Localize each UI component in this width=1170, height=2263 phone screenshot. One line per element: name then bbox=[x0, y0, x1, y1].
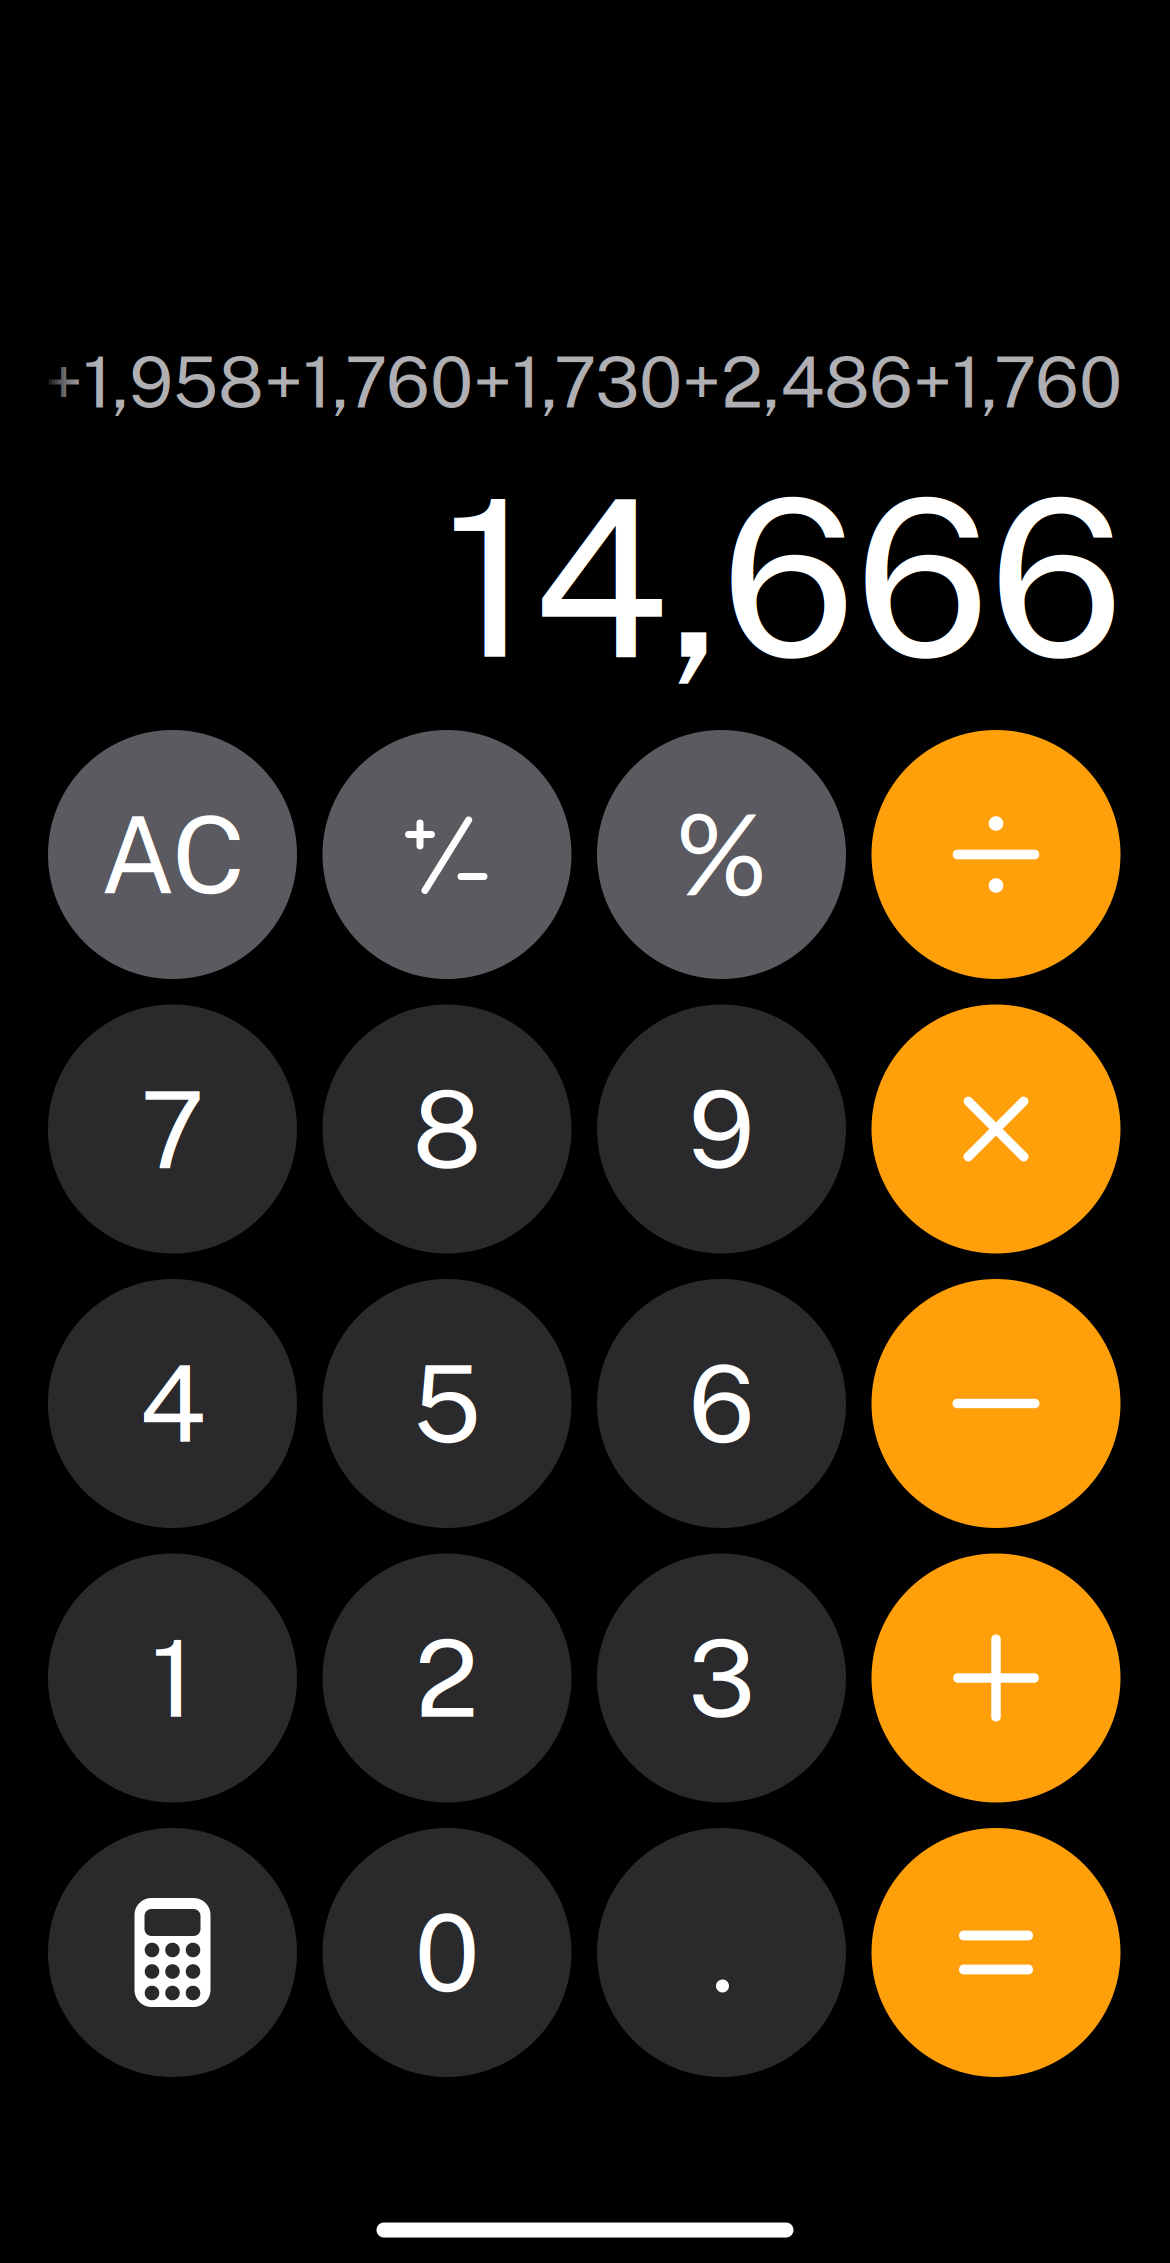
button[interactable]: Seven bbox=[48, 1004, 297, 1253]
staticText: % bbox=[676, 783, 767, 919]
staticText: 7 bbox=[140, 1066, 204, 1192]
button[interactable]: Multiply bbox=[871, 1004, 1120, 1253]
button[interactable]: Six bbox=[597, 1279, 846, 1528]
button[interactable]: Minus bbox=[871, 1279, 1120, 1528]
staticText: 3 bbox=[688, 1615, 755, 1741]
button[interactable]: Calculator modes bbox=[48, 1828, 297, 2077]
staticText: 2 bbox=[415, 1615, 479, 1741]
button[interactable]: Zero bbox=[322, 1828, 571, 2077]
button[interactable]: Four bbox=[48, 1279, 297, 1528]
staticText: 14,666 bbox=[444, 450, 1124, 706]
staticText: 6 bbox=[688, 1341, 754, 1466]
staticText: 0 bbox=[414, 1890, 479, 2015]
staticText: AC bbox=[100, 792, 245, 917]
staticText: +1,958+1,760+1,730+2,486+1,760 bbox=[44, 340, 1122, 423]
staticText: 4 bbox=[139, 1341, 206, 1466]
button[interactable]: One bbox=[48, 1553, 297, 1802]
button[interactable]: Five bbox=[322, 1279, 571, 1528]
staticText: 9 bbox=[688, 1066, 755, 1192]
button[interactable]: Decimal point bbox=[597, 1828, 846, 2077]
button[interactable]: Toggle sign bbox=[322, 730, 571, 979]
button[interactable]: Divide bbox=[871, 730, 1120, 979]
button[interactable]: Nine bbox=[597, 1004, 846, 1253]
button[interactable]: Two bbox=[322, 1553, 571, 1802]
button[interactable]: Equals bbox=[871, 1828, 1120, 2077]
button[interactable]: Three bbox=[597, 1553, 846, 1802]
staticText: 1 bbox=[151, 1615, 194, 1741]
staticText: 5 bbox=[413, 1341, 481, 1466]
button[interactable]: Plus bbox=[871, 1553, 1120, 1802]
button[interactable]: All clear bbox=[48, 730, 297, 979]
button[interactable]: Eight bbox=[322, 1004, 571, 1253]
staticText: 8 bbox=[412, 1066, 481, 1192]
button[interactable]: Percent bbox=[597, 730, 846, 979]
